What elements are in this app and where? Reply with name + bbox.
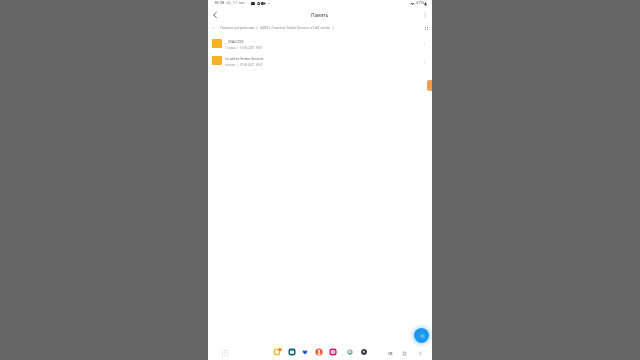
button[interactable]: __MACOSX bbox=[208, 35, 432, 52]
button[interactable]: Ещё bbox=[419, 39, 429, 49]
staticText: сб, 11 авг. bbox=[226, 0, 247, 6]
button[interactable]: Google bbox=[346, 348, 354, 356]
staticText: в папке | 19.06.2021 18:51 bbox=[225, 63, 263, 67]
button[interactable]: Назад bbox=[415, 348, 425, 358]
button[interactable]: Главный экран bbox=[399, 348, 409, 358]
button[interactable]: Ещё bbox=[419, 56, 429, 66]
staticText: Counter Strike Source bbox=[225, 56, 264, 61]
staticText: 18:38 bbox=[214, 0, 225, 6]
button[interactable]: Плавающее окно bbox=[414, 328, 429, 343]
button[interactable]: Сообщения bbox=[301, 348, 309, 356]
button[interactable]: Чат bbox=[274, 348, 282, 356]
button[interactable]: Ещё bbox=[418, 8, 431, 21]
button[interactable]: Последние приложения bbox=[385, 348, 395, 358]
button[interactable]: Календарь bbox=[288, 348, 296, 356]
button[interactable]: Назад bbox=[208, 8, 221, 21]
staticText: 1 папок | 19.06.2021 18:51 bbox=[225, 46, 263, 50]
staticText: Память устройства | 44831 Counter Strike… bbox=[220, 25, 335, 30]
staticText: Память bbox=[311, 12, 329, 18]
button[interactable]: Все приложения bbox=[220, 348, 230, 358]
staticText: __MACOSX bbox=[225, 39, 244, 44]
button[interactable]: Приложение bbox=[360, 348, 368, 356]
button[interactable]: Выбрать bbox=[422, 24, 431, 33]
button[interactable]: Приложение bbox=[329, 348, 337, 356]
button[interactable]: Приложение bbox=[315, 348, 323, 356]
button[interactable] bbox=[208, 22, 432, 34]
button[interactable]: Counter Strike Source bbox=[208, 52, 432, 68]
staticText: 37% bbox=[416, 0, 425, 6]
